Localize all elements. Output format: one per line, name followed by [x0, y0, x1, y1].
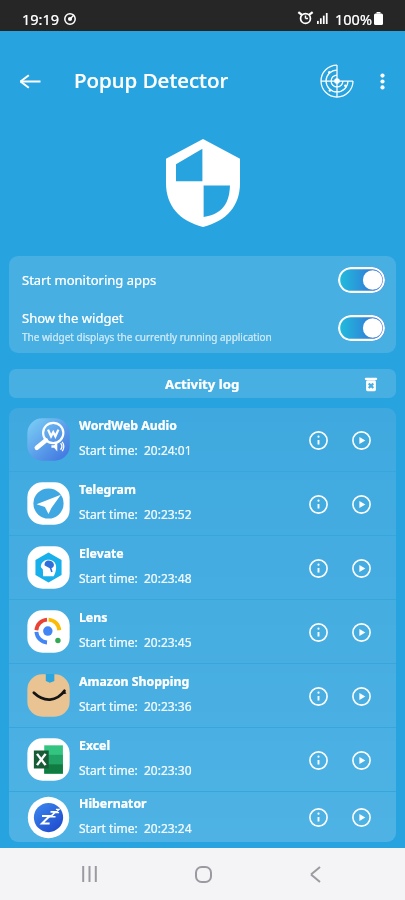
button[interactable]: Hibernator	[9, 792, 396, 842]
button[interactable]: Info	[304, 554, 332, 582]
button[interactable]: Excel	[9, 728, 396, 791]
staticText: Activity log	[165, 375, 240, 393]
button[interactable]: Info	[304, 618, 332, 646]
staticText: The widget displays the currently runnin…	[22, 330, 272, 344]
button[interactable]: Info	[304, 803, 332, 831]
staticText: Start time: 20:23:52	[79, 506, 192, 522]
button[interactable]: More options	[366, 65, 398, 97]
button[interactable]: Telegram	[9, 472, 396, 535]
staticText: Start time: 20:23:24	[79, 820, 192, 836]
button[interactable]: Clear log	[359, 372, 383, 396]
button[interactable]: Launch app	[347, 682, 375, 710]
button[interactable]: Back	[281, 848, 349, 900]
button[interactable]: Home	[169, 848, 237, 900]
staticText: Start time: 20:23:48	[79, 570, 192, 586]
button[interactable]: Launch app	[347, 554, 375, 582]
button[interactable]: Launch app	[347, 426, 375, 454]
staticText: Popup Detector	[74, 66, 229, 94]
button[interactable]: Info	[304, 682, 332, 710]
button[interactable]: Detector radar	[315, 59, 359, 103]
button[interactable]: Lens	[9, 600, 396, 663]
staticText: Telegram	[79, 481, 136, 498]
button[interactable]: Launch app	[347, 803, 375, 831]
staticText: Lens	[79, 609, 108, 626]
staticText: WordWeb Audio	[79, 417, 177, 434]
staticText: Start time: 20:23:30	[79, 762, 192, 778]
button[interactable]	[338, 315, 385, 341]
button[interactable]: Info	[304, 426, 332, 454]
button[interactable]: Amazon Shopping	[9, 664, 396, 727]
button[interactable]: Start monitoring apps	[9, 256, 396, 303]
staticText: Amazon Shopping	[79, 673, 190, 690]
staticText: 19:19	[22, 9, 60, 29]
staticText: Start monitoring apps	[22, 271, 157, 289]
staticText: Show the widget	[22, 309, 124, 327]
button[interactable]: Info	[304, 490, 332, 518]
button[interactable]: Elevate	[9, 536, 396, 599]
staticText: Start time: 20:23:45	[79, 634, 192, 650]
staticText: Elevate	[79, 545, 124, 562]
button[interactable]: Launch app	[347, 490, 375, 518]
staticText: Start time: 20:24:01	[79, 442, 192, 458]
button[interactable]	[338, 267, 385, 293]
button[interactable]: Back	[8, 59, 52, 103]
staticText: Excel	[79, 737, 111, 754]
staticText: Start time: 20:23:36	[79, 698, 192, 714]
button[interactable]: Launch app	[347, 618, 375, 646]
button[interactable]: WordWeb Audio	[9, 408, 396, 471]
button[interactable]: Show the widget	[9, 303, 396, 353]
button[interactable]: Launch app	[347, 746, 375, 774]
button[interactable]: Recent apps	[54, 848, 122, 900]
button[interactable]: Info	[304, 746, 332, 774]
staticText: Hibernator	[79, 795, 147, 812]
staticText: 100%	[335, 9, 372, 29]
